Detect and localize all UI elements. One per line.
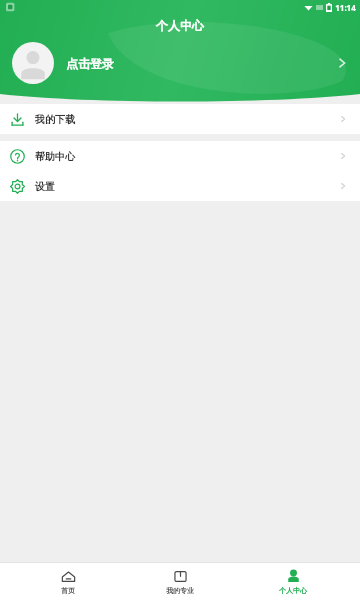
staticText: 我的下载 [35,113,75,126]
button[interactable]: Help center [0,141,360,171]
staticText: 个人中心 [156,18,204,33]
button[interactable]: My downloads [0,104,360,134]
staticText: 帮助中心 [35,150,75,163]
staticText: 点击登录 [66,56,114,71]
staticText: 首页 [61,586,75,595]
button[interactable]: 个人中心 [248,563,338,600]
staticText: 个人中心 [279,586,307,595]
staticText: 我的专业 [166,586,194,595]
button[interactable]: 首页 [23,563,113,600]
button[interactable]: Settings [0,171,360,201]
other: Help center [10,149,25,164]
button[interactable]: 我的专业 [135,563,225,600]
staticText: 设置 [35,180,55,193]
staticText: 11:14 [335,2,356,13]
other: Settings [10,179,25,194]
button[interactable]: 点击登录 [0,39,360,87]
other: My downloads [10,112,25,127]
